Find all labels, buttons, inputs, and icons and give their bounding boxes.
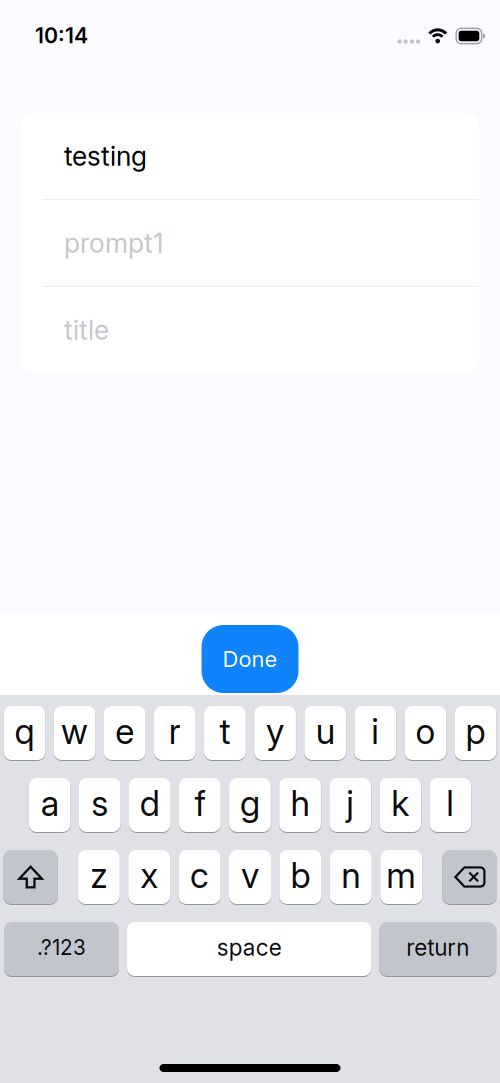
staticText: Done [222,646,277,672]
button[interactable]: r [154,706,196,760]
button[interactable]: v [229,850,271,904]
staticText: v [241,854,259,896]
button[interactable]: s [79,778,121,832]
button[interactable]: e [104,706,145,760]
staticText: space [217,934,282,961]
button[interactable]: a [29,778,70,832]
button[interactable]: d [129,778,171,832]
button[interactable]: q [4,706,45,760]
staticText: return [406,934,469,961]
staticText: t [219,710,230,752]
staticText: y [266,710,284,752]
button[interactable]: Done [201,625,298,693]
button[interactable]: t [204,706,246,760]
staticText: n [341,854,360,896]
staticText: m [386,854,416,896]
staticText: .?123 [37,935,86,960]
staticText: x [140,854,158,896]
button[interactable]: title [21,287,479,373]
button[interactable]: b [279,850,321,904]
button[interactable]: l [429,778,471,832]
staticText: q [14,710,34,752]
button[interactable]: prompt1 [21,200,479,286]
staticText: f [194,782,205,824]
staticText: r [169,710,181,752]
staticText: title [64,314,109,346]
staticText: j [346,782,354,824]
staticText: l [446,782,454,824]
staticText: d [140,782,160,824]
staticText: o [415,710,435,752]
staticText: k [391,782,409,824]
button[interactable]: testing [21,113,479,199]
staticText: c [190,854,209,896]
button[interactable]: k [379,778,421,832]
staticText: h [291,782,310,824]
button[interactable]: m [380,850,422,904]
staticText: 10:14 [35,23,88,48]
button[interactable]: h [279,778,321,832]
staticText: b [290,854,310,896]
staticText: z [90,854,107,896]
button[interactable]: j [329,778,371,832]
button[interactable]: i [354,706,396,760]
button[interactable]: c [179,850,221,904]
staticText: w [61,710,88,752]
staticText: p [465,710,485,752]
staticText: g [240,782,260,824]
staticText: a [41,782,59,824]
staticText: s [91,782,108,824]
button[interactable]: o [405,706,446,760]
button[interactable]: .?123 [4,922,119,976]
button[interactable]: return [379,922,496,976]
button[interactable]: y [254,706,296,760]
button[interactable]: space [127,922,371,976]
button[interactable]: w [54,706,95,760]
staticText: u [316,710,335,752]
button[interactable]: n [330,850,372,904]
staticText: i [371,710,379,752]
button[interactable]: f [179,778,221,832]
staticText: prompt1 [64,227,163,259]
button[interactable]: p [455,706,496,760]
button[interactable]: Shift [4,850,58,904]
staticText: testing [64,140,147,172]
button[interactable]: z [78,850,120,904]
staticText: e [115,710,134,752]
button[interactable]: Delete [442,850,496,904]
button[interactable]: u [304,706,346,760]
button[interactable]: x [128,850,170,904]
button[interactable]: g [229,778,271,832]
